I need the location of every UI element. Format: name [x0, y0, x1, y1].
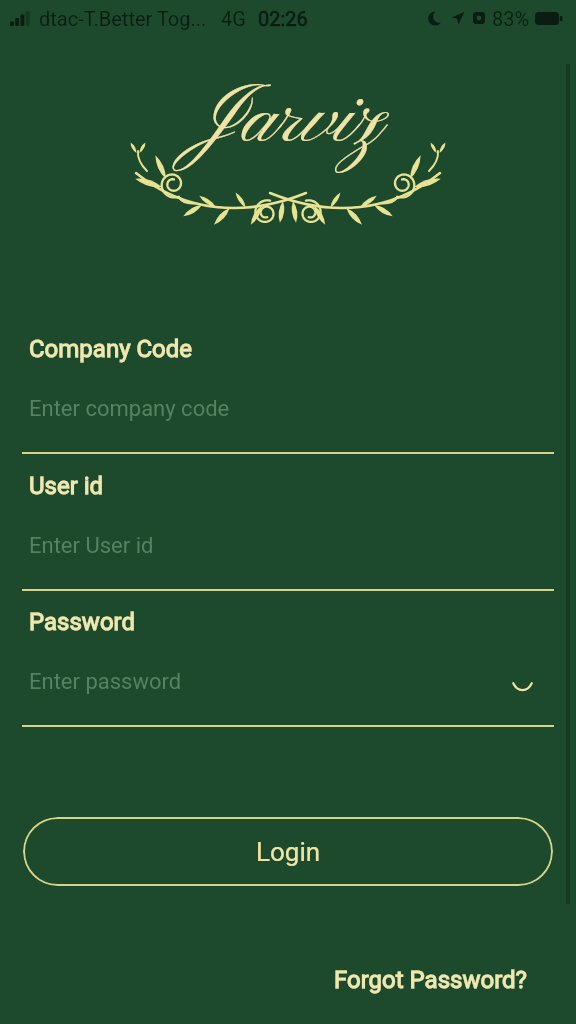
staticText: 4G: [221, 7, 246, 30]
button[interactable]: Show password: [499, 663, 545, 709]
staticText: Password: [29, 608, 136, 636]
staticText: 02:26: [258, 7, 308, 30]
staticText: Enter password: [29, 669, 182, 695]
staticText: Jarviz: [0, 70, 576, 172]
staticText: dtac-T.Better Tog...: [39, 7, 207, 30]
staticText: 83%: [492, 7, 530, 30]
staticText: Forgot Password?: [334, 966, 527, 994]
staticText: Company Code: [29, 335, 193, 363]
button[interactable]: Forgot Password?: [328, 962, 533, 998]
staticText: User id: [29, 472, 104, 500]
staticText: Login: [256, 837, 321, 867]
staticText: Enter company code: [29, 396, 230, 422]
button[interactable]: Login: [23, 817, 553, 886]
staticText: Enter User id: [29, 533, 154, 559]
